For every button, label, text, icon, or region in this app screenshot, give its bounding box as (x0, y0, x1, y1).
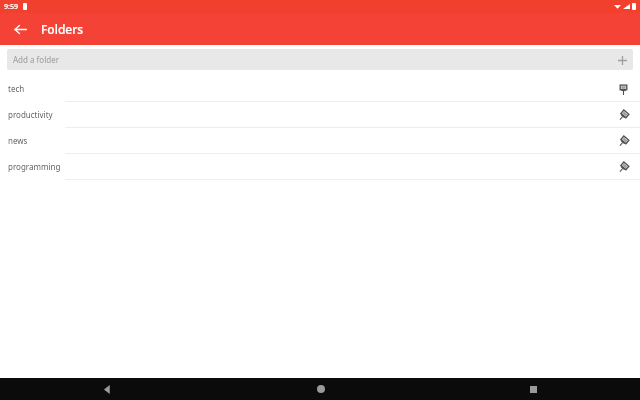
staticText: 9:59 (4, 2, 18, 12)
button[interactable]: productivity (0, 102, 640, 127)
button[interactable]: tech (0, 76, 640, 101)
button[interactable]: Pin tech (615, 81, 631, 97)
button[interactable]: Home (214, 378, 427, 400)
staticText: Folders (41, 21, 84, 37)
button[interactable]: Pin programming (615, 159, 631, 175)
staticText: productivity (8, 109, 53, 120)
button[interactable]: programming (0, 154, 640, 179)
button[interactable]: Add a folder (7, 49, 633, 70)
staticText: programming (8, 161, 61, 172)
button[interactable]: Pin news (615, 133, 631, 149)
button[interactable]: Back (8, 17, 32, 41)
button[interactable]: Back (0, 378, 214, 400)
button[interactable]: Pin productivity (615, 107, 631, 123)
staticText: Add a folder (13, 54, 59, 65)
button[interactable]: Recent apps (427, 378, 640, 400)
button[interactable]: news (0, 128, 640, 153)
staticText: news (8, 135, 28, 146)
staticText: tech (8, 83, 25, 94)
button[interactable]: Add folder (615, 53, 629, 67)
